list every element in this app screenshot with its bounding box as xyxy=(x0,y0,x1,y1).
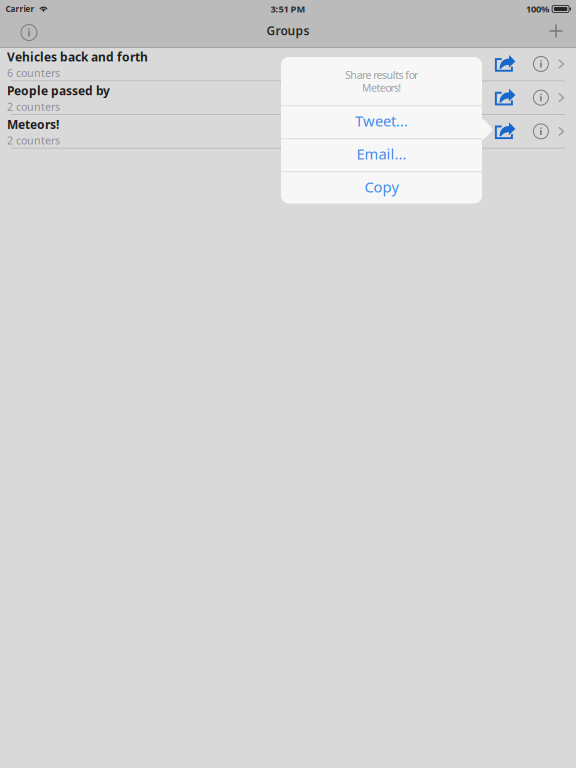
staticText: Meteors! xyxy=(362,80,401,95)
staticText: Email... xyxy=(356,144,406,163)
staticText: Groups xyxy=(266,22,309,38)
staticText: 3:51 PM xyxy=(270,3,305,15)
staticText: Tweet... xyxy=(355,111,408,130)
staticText: 2 counters xyxy=(7,133,60,147)
staticText: People passed by xyxy=(7,83,110,98)
button[interactable]: People passed by xyxy=(0,81,576,114)
button[interactable]: Add group xyxy=(532,20,576,47)
button[interactable]: Tweet... xyxy=(281,106,482,138)
button[interactable]: Email... xyxy=(281,139,482,171)
staticText: 2 counters xyxy=(7,100,60,114)
staticText: Meteors! xyxy=(7,116,59,132)
button[interactable]: Vehicles back and forth xyxy=(0,48,576,80)
staticText: Vehicles back and forth xyxy=(7,49,148,65)
staticText: Copy xyxy=(364,177,398,196)
staticText: Share results for xyxy=(345,68,418,82)
button[interactable]: Meteors! xyxy=(0,115,576,148)
staticText: 6 counters xyxy=(7,66,60,80)
staticText: Carrier xyxy=(5,4,34,14)
staticText: 100% xyxy=(526,3,549,15)
button[interactable]: Copy xyxy=(281,172,482,204)
button[interactable]: About xyxy=(7,20,51,47)
